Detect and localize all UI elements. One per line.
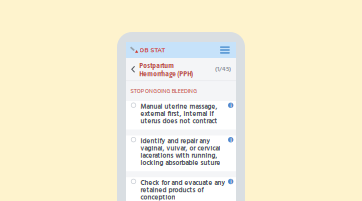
staticText: Check for and evacuate any retained prod… [140, 178, 225, 201]
staticText: i [230, 136, 231, 143]
staticText: Manual uterine massage, external first, … [140, 102, 217, 127]
staticText: i [230, 102, 231, 109]
button[interactable]: OB STAT home [130, 44, 166, 56]
staticText: i [230, 178, 231, 185]
staticText: OB STAT [140, 46, 166, 54]
button[interactable]: Back [126, 62, 139, 77]
button[interactable]: Identify and repair any vaginal, vulvar,… [126, 135, 236, 171]
button[interactable]: Menu [218, 44, 232, 56]
staticText: Postpartum Hemorrhage (PPH) [139, 61, 193, 78]
staticText: (1/45) [215, 64, 231, 74]
button[interactable]: Manual uterine massage, external first, … [126, 101, 236, 129]
button[interactable]: Check for and evacuate any retained prod… [126, 177, 236, 201]
staticText: Identify and repair any vaginal, vulvar,… [140, 136, 220, 169]
staticText: STOP ONGOING BLEEDING [131, 88, 197, 94]
